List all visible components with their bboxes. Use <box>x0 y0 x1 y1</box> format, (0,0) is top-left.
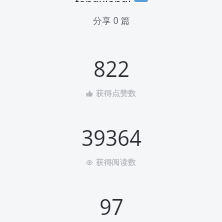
staticText: 获得点赞数 <box>96 88 136 98</box>
button[interactable]: fengxianqi <box>0 0 222 7</box>
staticText: 822 <box>93 55 130 84</box>
staticText: fengxianqi <box>75 0 131 2</box>
button[interactable]: 97 <box>0 193 222 222</box>
button[interactable]: 分享 0 篇 <box>0 14 222 26</box>
staticText: 97 <box>99 193 124 222</box>
button[interactable]: 39364 <box>0 124 222 167</box>
staticText: 获得阅读数 <box>96 157 136 167</box>
button[interactable]: 822 <box>0 55 222 98</box>
staticText: 39364 <box>81 124 142 153</box>
staticText: 分享 0 篇 <box>93 14 130 26</box>
